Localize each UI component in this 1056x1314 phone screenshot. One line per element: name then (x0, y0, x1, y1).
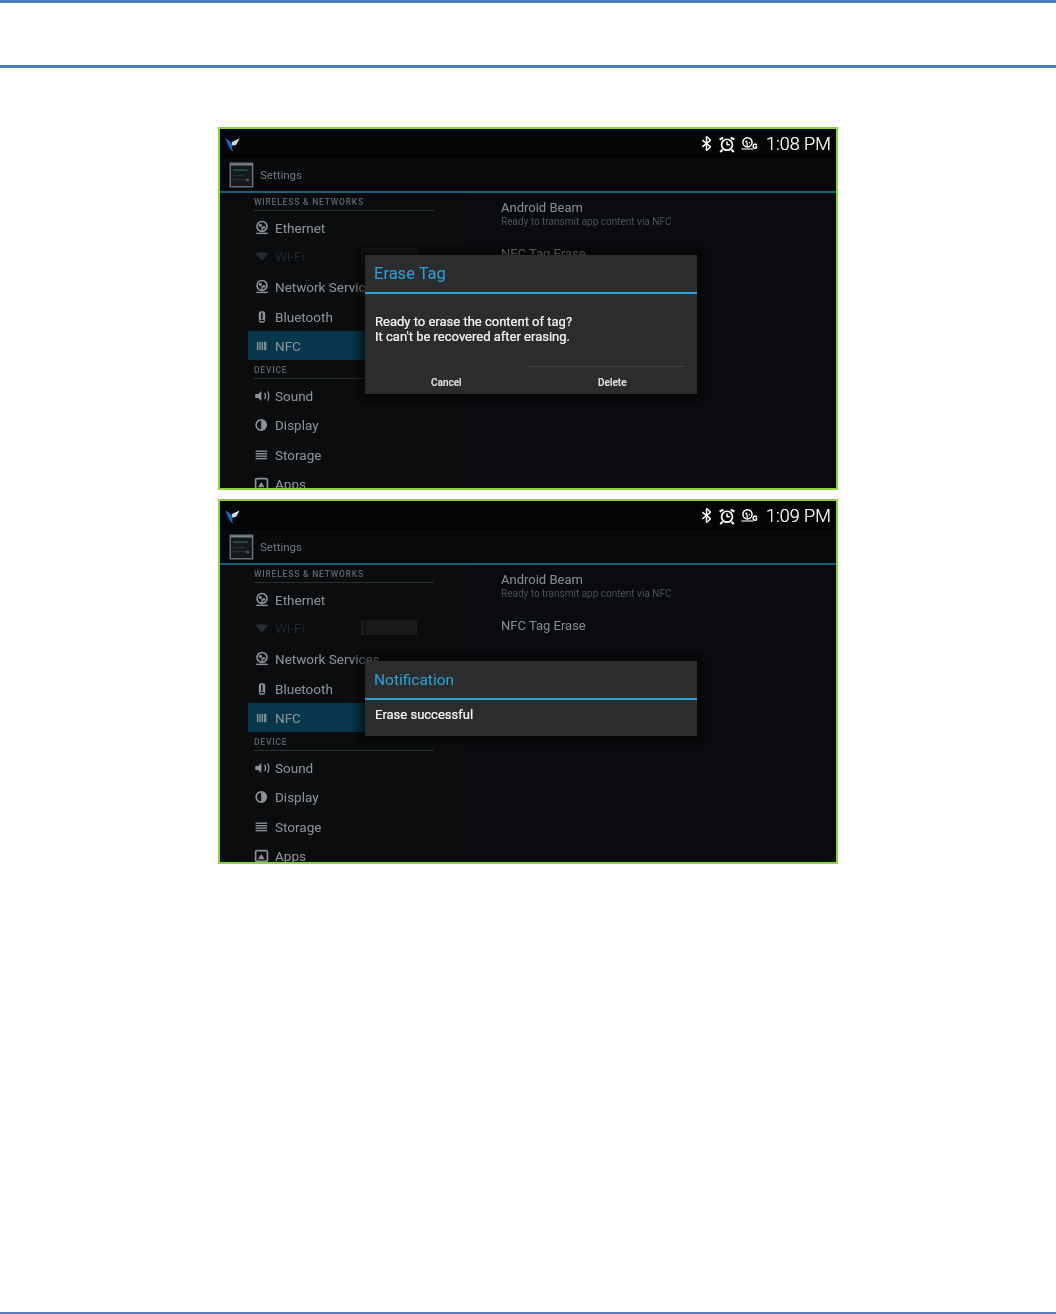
staticText: NFC Tag Erase (501, 618, 586, 633)
button[interactable]: NFC Tag Erase (501, 618, 586, 633)
staticText: It can't be recovered after erasing. (375, 329, 570, 344)
button[interactable]: NFC Tag Erase (501, 246, 586, 261)
staticText: Apps (275, 848, 306, 862)
staticText: Settings (260, 540, 302, 553)
staticText: Display (275, 789, 319, 805)
button[interactable]: Recent apps (224, 508, 244, 528)
button[interactable]: Android Beam (501, 200, 672, 228)
staticText: 1:08 PM (766, 133, 831, 154)
staticText: Android Beam (501, 200, 583, 215)
button[interactable]: System status: Bluetooth on, alarm set, … (701, 133, 831, 154)
button[interactable]: NFC (248, 703, 465, 732)
staticText: Ethernet (275, 220, 326, 236)
staticText: Sound (275, 760, 314, 776)
staticText: DEVICE (254, 365, 288, 375)
staticText: Apps (275, 476, 306, 488)
staticText: Android Beam (501, 572, 583, 587)
button[interactable]: Storage (248, 812, 465, 841)
button[interactable]: Settings (220, 530, 836, 563)
button[interactable]: Display (248, 782, 465, 811)
staticText: NFC (275, 338, 301, 354)
button[interactable]: Android Beam (501, 572, 672, 600)
button[interactable]: Display (248, 410, 465, 439)
button[interactable]: Apps (248, 841, 465, 862)
button[interactable]: Ethernet (248, 585, 465, 614)
button[interactable]: Wi-Fi (248, 241, 465, 270)
staticText: Notification (374, 671, 455, 689)
button[interactable]: Apps (248, 469, 465, 488)
staticText: Cancel (431, 377, 462, 389)
button[interactable]: Bluetooth (248, 674, 465, 703)
staticText: Ready to erase the content of tag? (375, 314, 573, 329)
button[interactable]: Network Services (248, 644, 465, 673)
button[interactable]: Recent apps (224, 136, 244, 156)
button[interactable]: Wi-Fi (248, 613, 465, 642)
staticText: NFC Tag Erase (501, 246, 586, 261)
staticText: Storage (275, 819, 322, 835)
staticText: WIRELESS & NETWORKS (254, 569, 364, 579)
button[interactable]: NFC (248, 331, 465, 360)
staticText: Ready to transmit app content via NFC (501, 216, 672, 228)
button[interactable]: Settings (220, 158, 836, 191)
staticText: Settings (260, 168, 302, 181)
staticText: NFC (275, 710, 301, 726)
staticText: 1:09 PM (766, 505, 831, 526)
staticText: Erase successful (375, 707, 474, 722)
button[interactable]: Bluetooth (248, 302, 465, 331)
staticText: Bluetooth (275, 309, 333, 325)
button[interactable]: Network Services (248, 272, 465, 301)
staticText: Sound (275, 388, 314, 404)
button[interactable]: Cancel (363, 370, 529, 396)
staticText: Network Services (275, 651, 380, 667)
staticText: Bluetooth (275, 681, 333, 697)
staticText: WIRELESS & NETWORKS (254, 197, 364, 207)
staticText: Wi-Fi (275, 620, 305, 636)
button[interactable]: Toggle Wi-Fi (361, 248, 417, 263)
staticText: Ready to transmit app content via NFC (501, 588, 672, 600)
staticText: DEVICE (254, 737, 288, 747)
button[interactable]: Storage (248, 440, 465, 469)
staticText: Ethernet (275, 592, 326, 608)
staticText: Wi-Fi (275, 248, 305, 264)
staticText: Delete (598, 377, 627, 389)
button[interactable]: Sound (248, 753, 465, 782)
staticText: Erase Tag (374, 264, 446, 283)
staticText: Storage (275, 447, 322, 463)
staticText: Display (275, 417, 319, 433)
button[interactable]: Ethernet (248, 213, 465, 242)
button[interactable]: Sound (248, 381, 465, 410)
button[interactable]: System status: Bluetooth on, alarm set, … (701, 505, 831, 526)
staticText: Network Services (275, 279, 380, 295)
button[interactable]: Delete (529, 370, 695, 396)
